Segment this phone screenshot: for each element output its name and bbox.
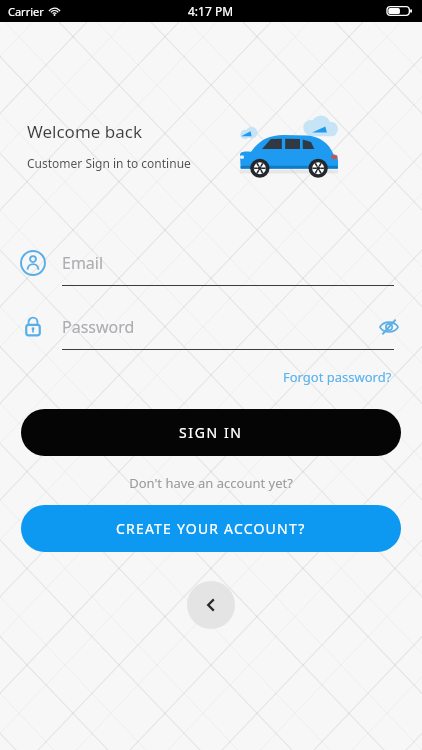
button[interactable]: Account [0, 246, 422, 286]
other: Password [20, 314, 46, 340]
staticText: CREATE YOUR ACCOUNT? [116, 519, 306, 538]
staticText: Don't have an account yet? [0, 474, 422, 492]
staticText: Carrier [8, 4, 44, 19]
button[interactable]: Back [187, 581, 235, 629]
button[interactable]: Forgot password? [281, 364, 394, 390]
staticText: Email [62, 252, 104, 274]
button[interactable]: SIGN IN [21, 409, 401, 456]
staticText: 4:17 PM [188, 3, 234, 19]
button[interactable]: CREATE YOUR ACCOUNT? [21, 505, 401, 552]
button[interactable]: Show password [378, 316, 400, 338]
staticText: SIGN IN [179, 423, 243, 442]
button[interactable]: Password [0, 310, 422, 350]
staticText: Forgot password? [283, 368, 392, 386]
staticText: Password [62, 316, 135, 338]
other: Account [20, 250, 46, 276]
staticText: Welcome back [27, 120, 143, 143]
staticText: Customer Sign in to continue [27, 155, 191, 171]
